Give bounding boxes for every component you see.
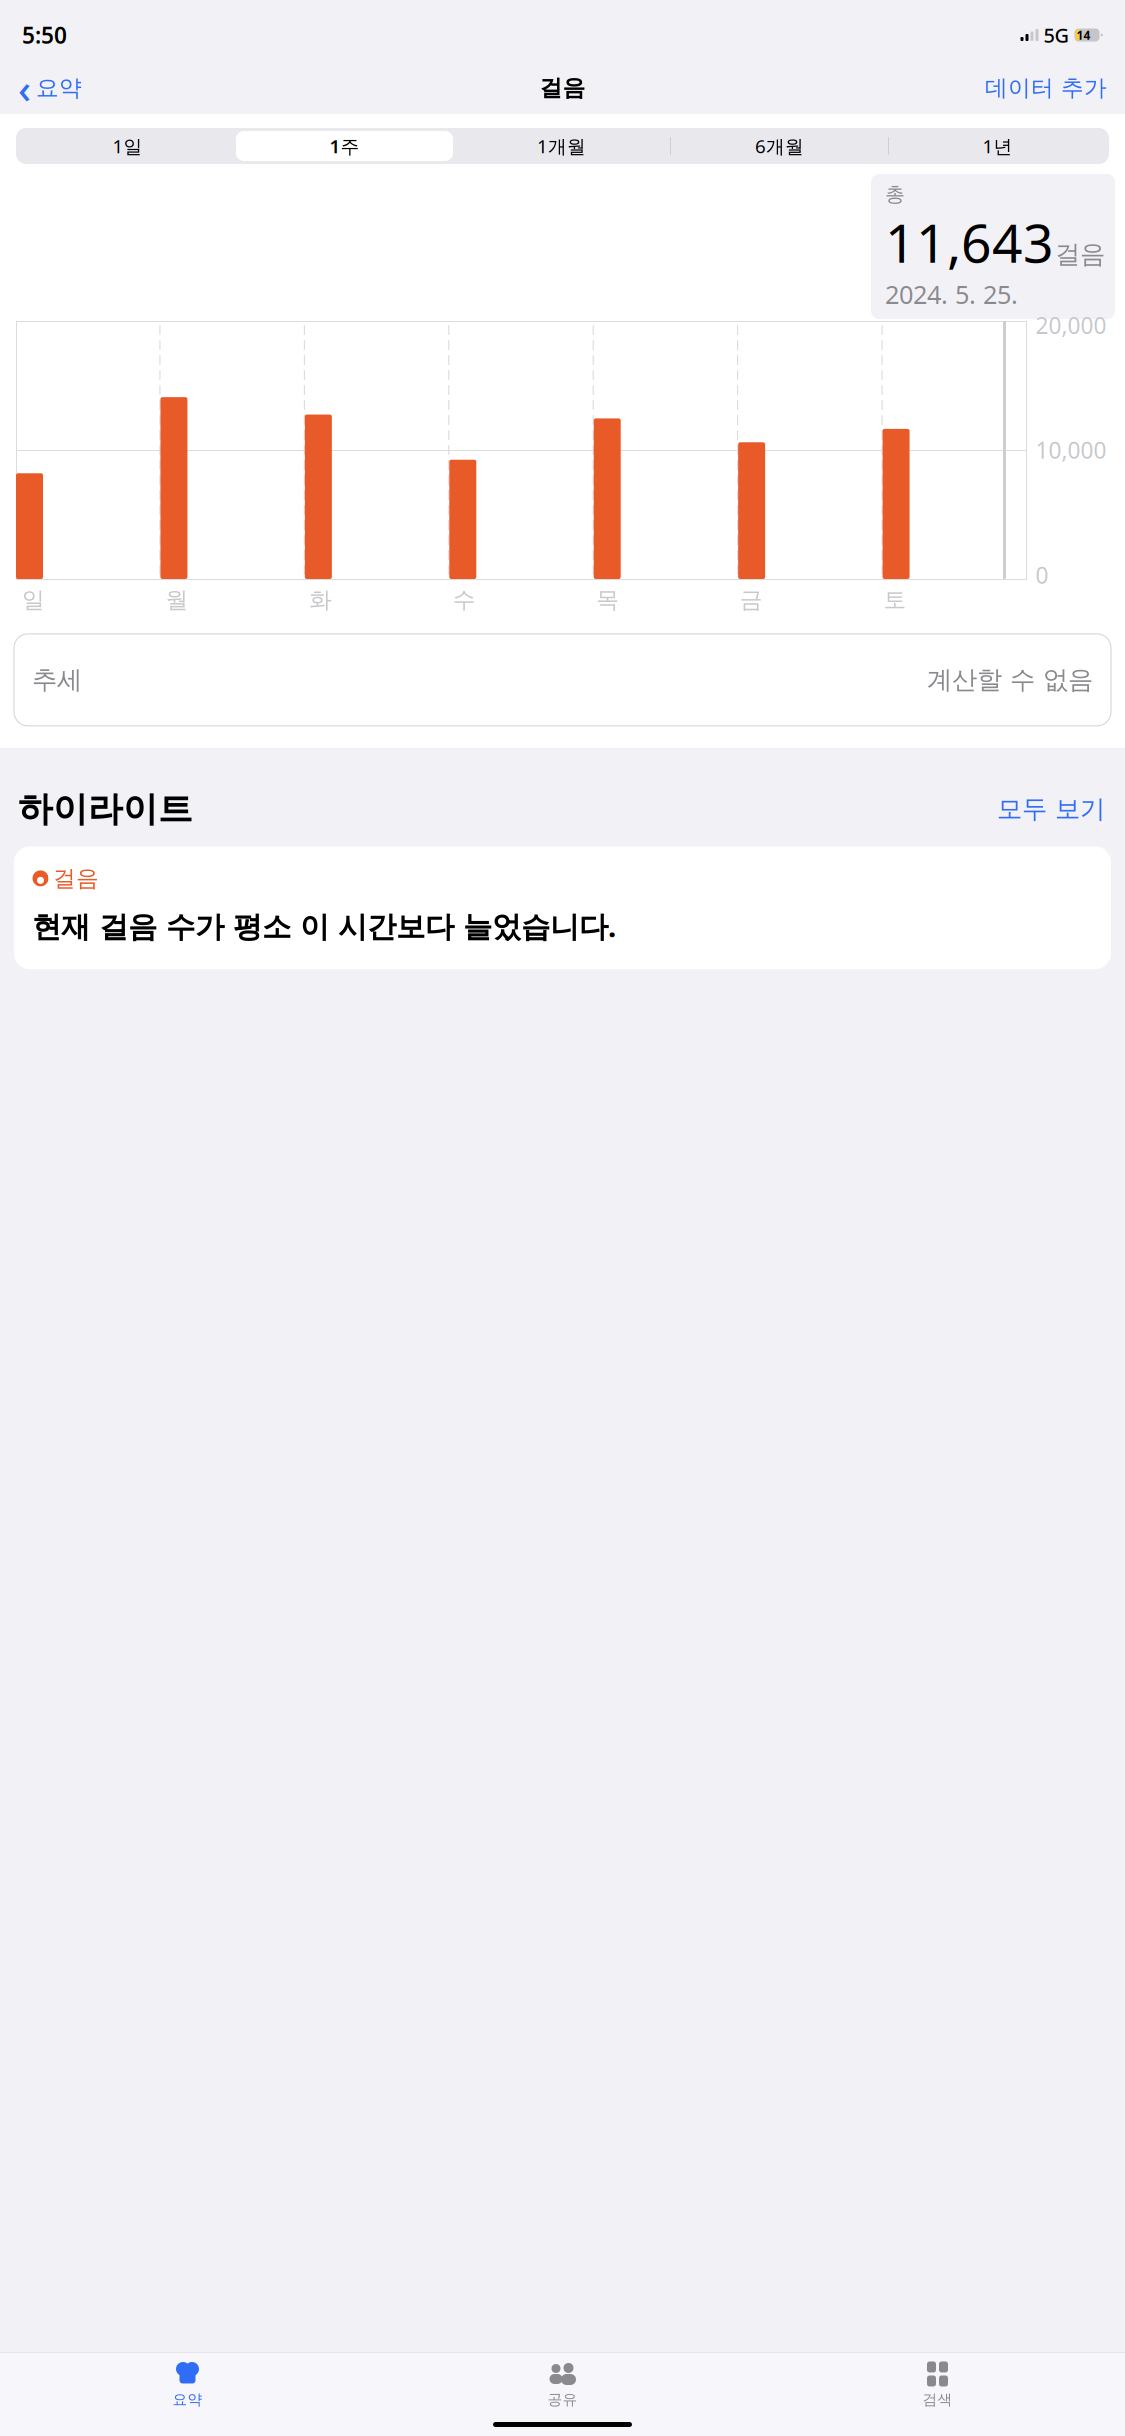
staticText: 걸음	[539, 74, 585, 102]
staticText: 6개월	[755, 134, 804, 158]
staticText: 수	[453, 586, 476, 614]
staticText: 1주	[329, 134, 359, 158]
staticText: 화	[309, 586, 332, 614]
staticText: 1일	[112, 134, 142, 158]
staticText: 5G	[1043, 22, 1069, 48]
staticText: 2024. 5. 25.	[885, 277, 1018, 311]
button[interactable]: 요약	[0, 2360, 375, 2408]
button[interactable]: 모두 보기	[995, 790, 1107, 829]
button[interactable]: ‹	[14, 55, 86, 120]
staticText: 현재 걸음 수가 평소 이 시간보다 늘었습니다.	[32, 906, 616, 945]
staticText: 월	[166, 586, 189, 614]
button[interactable]: 1개월	[453, 131, 670, 161]
staticText: 20,000	[1035, 310, 1106, 340]
staticText: 0	[1035, 560, 1048, 590]
button[interactable]: 6개월	[671, 131, 888, 161]
button[interactable]: 검색	[750, 2360, 1125, 2408]
staticText: 추세	[32, 664, 82, 695]
staticText: 10,000	[1035, 435, 1106, 465]
staticText: 목	[596, 586, 619, 614]
staticText: 걸음	[53, 864, 99, 892]
staticText: 5:50	[22, 20, 67, 50]
staticText: 1년	[982, 134, 1012, 158]
staticText: 요약	[36, 74, 82, 102]
staticText: 공유	[547, 2390, 577, 2408]
staticText: 검색	[922, 2390, 952, 2408]
staticText: 1개월	[537, 134, 586, 158]
staticText: 계산할 수 없음	[927, 664, 1093, 695]
staticText: 모두 보기	[997, 794, 1105, 825]
staticText: ‹	[18, 61, 31, 114]
staticText: 데이터 추가	[985, 74, 1107, 102]
staticText: 걸음	[1055, 239, 1105, 270]
staticText: 일	[22, 586, 45, 614]
staticText: 11,643	[885, 207, 1054, 277]
staticText: 요약	[172, 2390, 202, 2408]
button[interactable]: 공유	[375, 2360, 750, 2408]
staticText: 금	[740, 586, 763, 614]
button[interactable]: 1년	[889, 131, 1106, 161]
button[interactable]: 1일	[19, 131, 236, 161]
button[interactable]: 걸음	[14, 846, 1111, 969]
button[interactable]: 1주	[236, 131, 453, 161]
staticText: 14	[1076, 27, 1090, 43]
staticText: 하이라이트	[18, 788, 193, 830]
button[interactable]: 추세	[14, 634, 1111, 726]
staticText: 토	[883, 586, 906, 614]
button[interactable]: 데이터 추가	[981, 68, 1111, 108]
staticText: 총	[885, 182, 905, 207]
